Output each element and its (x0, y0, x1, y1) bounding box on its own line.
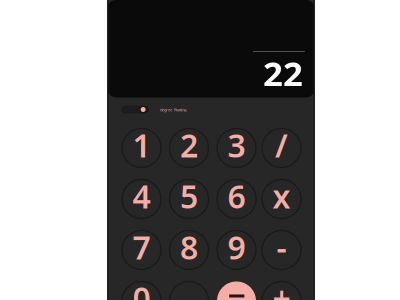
button[interactable]: floating (174, 107, 186, 112)
staticText: 7 (132, 226, 150, 268)
staticText: floating (174, 107, 186, 112)
button[interactable]: 5 (169, 179, 208, 218)
staticText: / (275, 124, 288, 166)
button[interactable]: - (262, 230, 301, 269)
button[interactable]: 1 (122, 128, 161, 167)
button[interactable]: = (217, 281, 256, 300)
button[interactable]: 0 (122, 281, 161, 300)
staticText: = (227, 277, 245, 300)
button[interactable]: + (262, 281, 301, 300)
staticText: 6 (227, 175, 245, 217)
staticText: 22 (263, 50, 303, 96)
button[interactable]: Angle mode toggle (121, 105, 149, 113)
staticText: x (272, 175, 290, 217)
staticText: 1 (132, 124, 150, 166)
button[interactable]: 2 (169, 128, 208, 167)
button[interactable]: / (262, 128, 301, 167)
button[interactable]: 3 (217, 128, 256, 167)
button[interactable]: 7 (122, 230, 161, 269)
staticText: 8 (180, 226, 198, 268)
staticText: degree (160, 107, 172, 112)
button[interactable]: 9 (217, 230, 256, 269)
staticText: 2 (180, 124, 198, 166)
button[interactable]: . (169, 281, 208, 300)
button[interactable]: 4 (122, 179, 161, 218)
staticText: 9 (227, 226, 245, 268)
staticText: 3 (227, 124, 245, 166)
button[interactable]: 6 (217, 179, 256, 218)
staticText: 5 (180, 175, 198, 217)
button[interactable]: degree (160, 107, 172, 112)
button[interactable]: x (262, 179, 301, 218)
staticText: + (272, 277, 290, 300)
button[interactable]: 8 (169, 230, 208, 269)
staticText: 4 (132, 175, 150, 217)
staticText: - (276, 226, 286, 268)
staticText: 0 (132, 277, 150, 300)
